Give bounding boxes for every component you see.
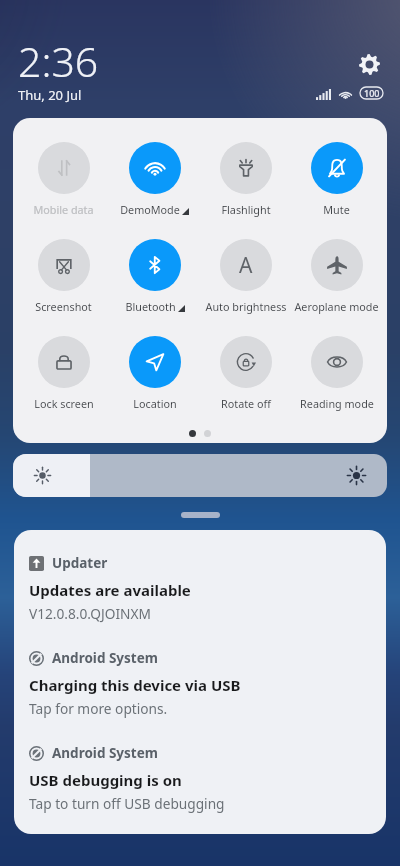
staticText: Screenshot [35,299,92,314]
staticText: Tap for more options. [29,699,168,718]
staticText: Charging this device via USB [29,675,241,695]
staticText: V12.0.8.0.QJOINXM [29,604,151,623]
staticText: Android System [52,649,158,667]
staticText: Mute [323,202,350,217]
button[interactable]: Mute [291,142,382,217]
staticText: Bluetooth [125,299,176,314]
staticText: Reading mode [300,396,374,411]
button[interactable]: A [200,239,291,314]
button[interactable]: Screenshot [18,239,109,314]
button[interactable]: Brightness [13,454,387,497]
button[interactable]: Flashlight [200,142,291,217]
staticText: Rotate off [221,396,271,411]
button[interactable]: Android System [29,744,371,813]
staticText: Flashlight [221,202,271,217]
button[interactable]: Aeroplane mode [291,239,382,314]
staticText: Android System [52,744,158,762]
button[interactable]: Updater [29,554,371,623]
staticText: Mobile data [33,202,94,217]
button[interactable]: Mobile data [18,142,109,217]
button[interactable]: DemoMode [109,142,200,217]
button[interactable]: Settings [359,54,380,75]
button[interactable]: Bluetooth [109,239,200,314]
staticText: DemoMode [120,202,180,217]
staticText: USB debugging is on [29,770,182,790]
staticText: Aeroplane mode [294,299,379,314]
staticText: A [239,251,253,280]
staticText: Auto brightness [205,299,287,314]
staticText: Thu, 20 Jul [18,86,82,104]
button[interactable]: Lock screen [18,336,109,411]
staticText: Tap to turn off USB debugging [29,794,225,813]
button[interactable]: Android System [29,649,371,718]
staticText: Lock screen [34,396,94,411]
button[interactable]: Location [109,336,200,411]
staticText: Updates are available [29,580,191,600]
button[interactable]: Reading mode [291,336,382,411]
staticText: 100 [364,87,380,99]
staticText: Location [133,396,177,411]
staticText: Updater [52,554,108,572]
button[interactable]: Rotate off [200,336,291,411]
staticText: 2:36 [18,33,99,89]
